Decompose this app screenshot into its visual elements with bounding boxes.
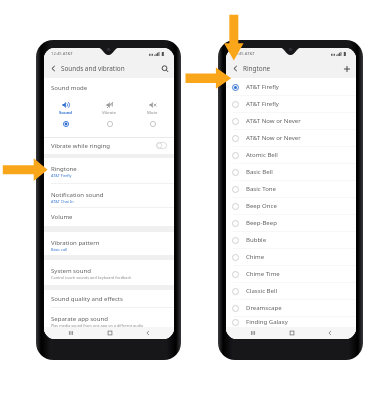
staticText: Volume (51, 213, 73, 221)
button[interactable]: Sound quality and effects (44, 290, 174, 308)
button[interactable]: Separate app sound (44, 308, 174, 327)
button[interactable]: Recents (65, 327, 76, 338)
staticText: Vibration pattern (51, 239, 100, 247)
button[interactable]: AT&T Firefly (226, 96, 356, 112)
staticText: AT&T Chat In (51, 199, 74, 204)
button[interactable]: Beep-Beep (226, 215, 356, 231)
staticText: Beep-Beep (246, 219, 277, 227)
button[interactable]: Atomic Bell (226, 147, 356, 163)
staticText: Mute (147, 110, 158, 116)
staticText: Notification sound (51, 191, 104, 199)
staticText: Ringtone (51, 165, 77, 173)
staticText: Dreamscape (246, 304, 282, 312)
staticText: Chime Time (246, 270, 280, 278)
staticText: Basic Bell (246, 168, 273, 176)
button[interactable]: AT&T Firefly (226, 79, 356, 95)
staticText: 12:45 AT&T (233, 51, 255, 57)
button[interactable]: Search (158, 62, 171, 75)
staticText: Basic call (51, 247, 67, 252)
staticText: Chime (246, 253, 265, 261)
button[interactable]: Bubble (226, 232, 356, 248)
button[interactable]: Sound (62, 120, 70, 128)
button[interactable]: Volume (44, 208, 174, 226)
button[interactable]: Classic Bell (226, 283, 356, 299)
button[interactable]: Back (229, 62, 242, 75)
staticText: Sound (59, 110, 73, 116)
staticText: Basic Tone (246, 185, 276, 193)
staticText: Vibrate (102, 110, 117, 116)
button[interactable]: Chime (226, 249, 356, 265)
staticText: Sound quality and effects (51, 295, 123, 303)
button[interactable]: Beep Once (226, 198, 356, 214)
button[interactable]: Add (340, 62, 353, 75)
staticText: AT&T Now or Never (246, 117, 301, 125)
button[interactable]: System sound (44, 260, 174, 285)
button[interactable]: Ringtone (44, 158, 174, 184)
staticText: Vibrate while ringing (51, 142, 110, 150)
button[interactable]: Vibrate while ringing (44, 137, 174, 154)
staticText: Sounds and vibration (61, 64, 125, 73)
button[interactable]: Basic Tone (226, 181, 356, 197)
staticText: AT&T Firefly (246, 83, 279, 91)
staticText: Ringtone (243, 64, 271, 73)
button[interactable]: Notification sound (44, 184, 174, 208)
button[interactable]: Back (47, 62, 60, 75)
staticText: Atomic Bell (246, 151, 278, 159)
button[interactable]: Basic Bell (226, 164, 356, 180)
button[interactable]: Home (286, 327, 297, 338)
staticText: AT&T Now or Never (246, 134, 301, 142)
staticText: Bubble (246, 236, 267, 244)
staticText: Separate app sound (51, 315, 108, 323)
button[interactable]: AT&T Now or Never (226, 130, 356, 146)
staticText: AT&T Firefly (51, 173, 72, 178)
staticText: 12:45 AT&T (51, 51, 73, 57)
staticText: AT&T Firefly (246, 100, 279, 108)
staticText: Play media sound from one app on a diffe… (51, 323, 144, 328)
staticText: Finding Galaxy (246, 318, 288, 326)
button[interactable]: AT&T Now or Never (226, 113, 356, 129)
button[interactable]: Finding Galaxy (226, 317, 356, 327)
staticText: Control touch sounds and keyboard feedba… (51, 275, 132, 280)
button[interactable]: Dreamscape (226, 300, 356, 316)
button[interactable]: Mute (149, 120, 157, 128)
staticText: System sound (51, 267, 91, 275)
button[interactable]: Back (142, 327, 153, 338)
staticText: Beep Once (246, 202, 277, 210)
button[interactable]: Vibrate (106, 120, 114, 128)
button[interactable]: Back (324, 327, 335, 338)
button[interactable]: Chime Time (226, 266, 356, 282)
button[interactable]: Home (104, 327, 115, 338)
button[interactable]: Vibration pattern (44, 232, 174, 255)
button[interactable]: Recents (247, 327, 258, 338)
staticText: Sound mode (51, 84, 88, 92)
staticText: Classic Bell (246, 287, 278, 295)
